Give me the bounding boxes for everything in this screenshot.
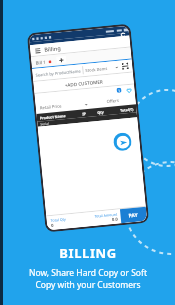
staticText: Retail Price bbox=[40, 103, 62, 111]
button[interactable]: Share bill bbox=[113, 132, 132, 151]
staticText: IP bbox=[76, 111, 92, 117]
button[interactable]: Refresh bbox=[121, 33, 125, 36]
button[interactable]: Retail Price bbox=[40, 101, 88, 111]
staticText: Qty bbox=[91, 109, 110, 116]
staticText: PAY bbox=[128, 212, 139, 219]
staticText: Total(₹) bbox=[109, 107, 134, 114]
button[interactable]: Info bbox=[116, 88, 122, 93]
staticText: Offers bbox=[106, 98, 120, 105]
button[interactable]: Offers bbox=[93, 97, 132, 106]
staticText: Total Qty bbox=[50, 216, 67, 223]
staticText: BILLING bbox=[59, 244, 117, 262]
button[interactable]: Favourite bbox=[125, 87, 132, 93]
staticText: Billing bbox=[44, 44, 61, 53]
staticText: Serial bbox=[40, 122, 50, 126]
staticText: 0.0 bbox=[112, 217, 118, 223]
staticText: Product Name bbox=[40, 112, 77, 120]
button[interactable]: Add bill bbox=[56, 56, 67, 64]
button[interactable]: +ADD CUSTOMER bbox=[33, 72, 134, 93]
staticText: Now, Share Hard Copy or Soft Copy with y… bbox=[29, 267, 147, 291]
staticText: Stock Items bbox=[85, 66, 108, 73]
staticText: Bill 1 bbox=[35, 59, 47, 66]
staticText: +ADD CUSTOMER bbox=[64, 78, 104, 88]
button[interactable]: Total Amount bbox=[80, 212, 118, 226]
button[interactable]: Search by ProductName bbox=[35, 66, 83, 80]
staticText: i bbox=[118, 88, 120, 93]
button[interactable]: Menu bbox=[34, 47, 41, 54]
staticText: Search by ProductName bbox=[35, 68, 82, 78]
button[interactable]: Scan barcode bbox=[121, 62, 130, 70]
button[interactable]: PAY bbox=[120, 207, 147, 223]
button[interactable]: Total Qty bbox=[50, 215, 81, 229]
staticText: 0 bbox=[51, 223, 54, 229]
staticText: Total Amount bbox=[94, 212, 118, 219]
button[interactable]: Bill 1 bbox=[35, 58, 52, 66]
button[interactable]: Stock Items bbox=[85, 63, 119, 75]
